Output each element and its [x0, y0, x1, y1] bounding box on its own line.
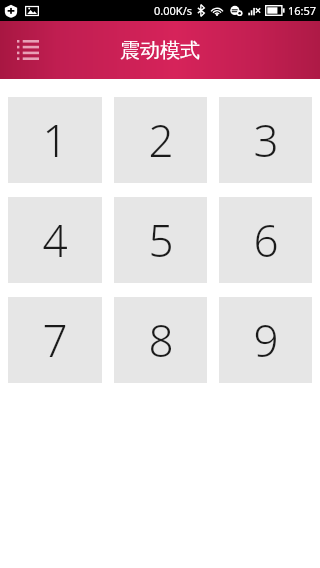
button[interactable]: 9	[219, 297, 312, 383]
button[interactable]: Menu	[8, 30, 48, 70]
staticText: 0.00K/s	[154, 3, 192, 18]
staticText: 7	[42, 310, 68, 370]
button[interactable]: 1	[8, 97, 102, 183]
button[interactable]: 3	[219, 97, 312, 183]
staticText: 8	[148, 310, 174, 370]
button[interactable]: 6	[219, 197, 312, 283]
button[interactable]: 2	[114, 97, 207, 183]
staticText: 4	[42, 210, 68, 270]
staticText: 9	[253, 310, 279, 370]
staticText: 1	[42, 110, 68, 170]
button[interactable]: 7	[8, 297, 102, 383]
staticText: 2	[148, 110, 174, 170]
staticText: 6	[253, 210, 279, 270]
staticText: 3	[253, 110, 279, 170]
button[interactable]: 4	[8, 197, 102, 283]
button[interactable]: 5	[114, 197, 207, 283]
button[interactable]: 8	[114, 297, 207, 383]
staticText: 震动模式	[120, 38, 200, 63]
staticText: 5	[148, 210, 174, 270]
staticText: 16:57	[288, 3, 317, 18]
